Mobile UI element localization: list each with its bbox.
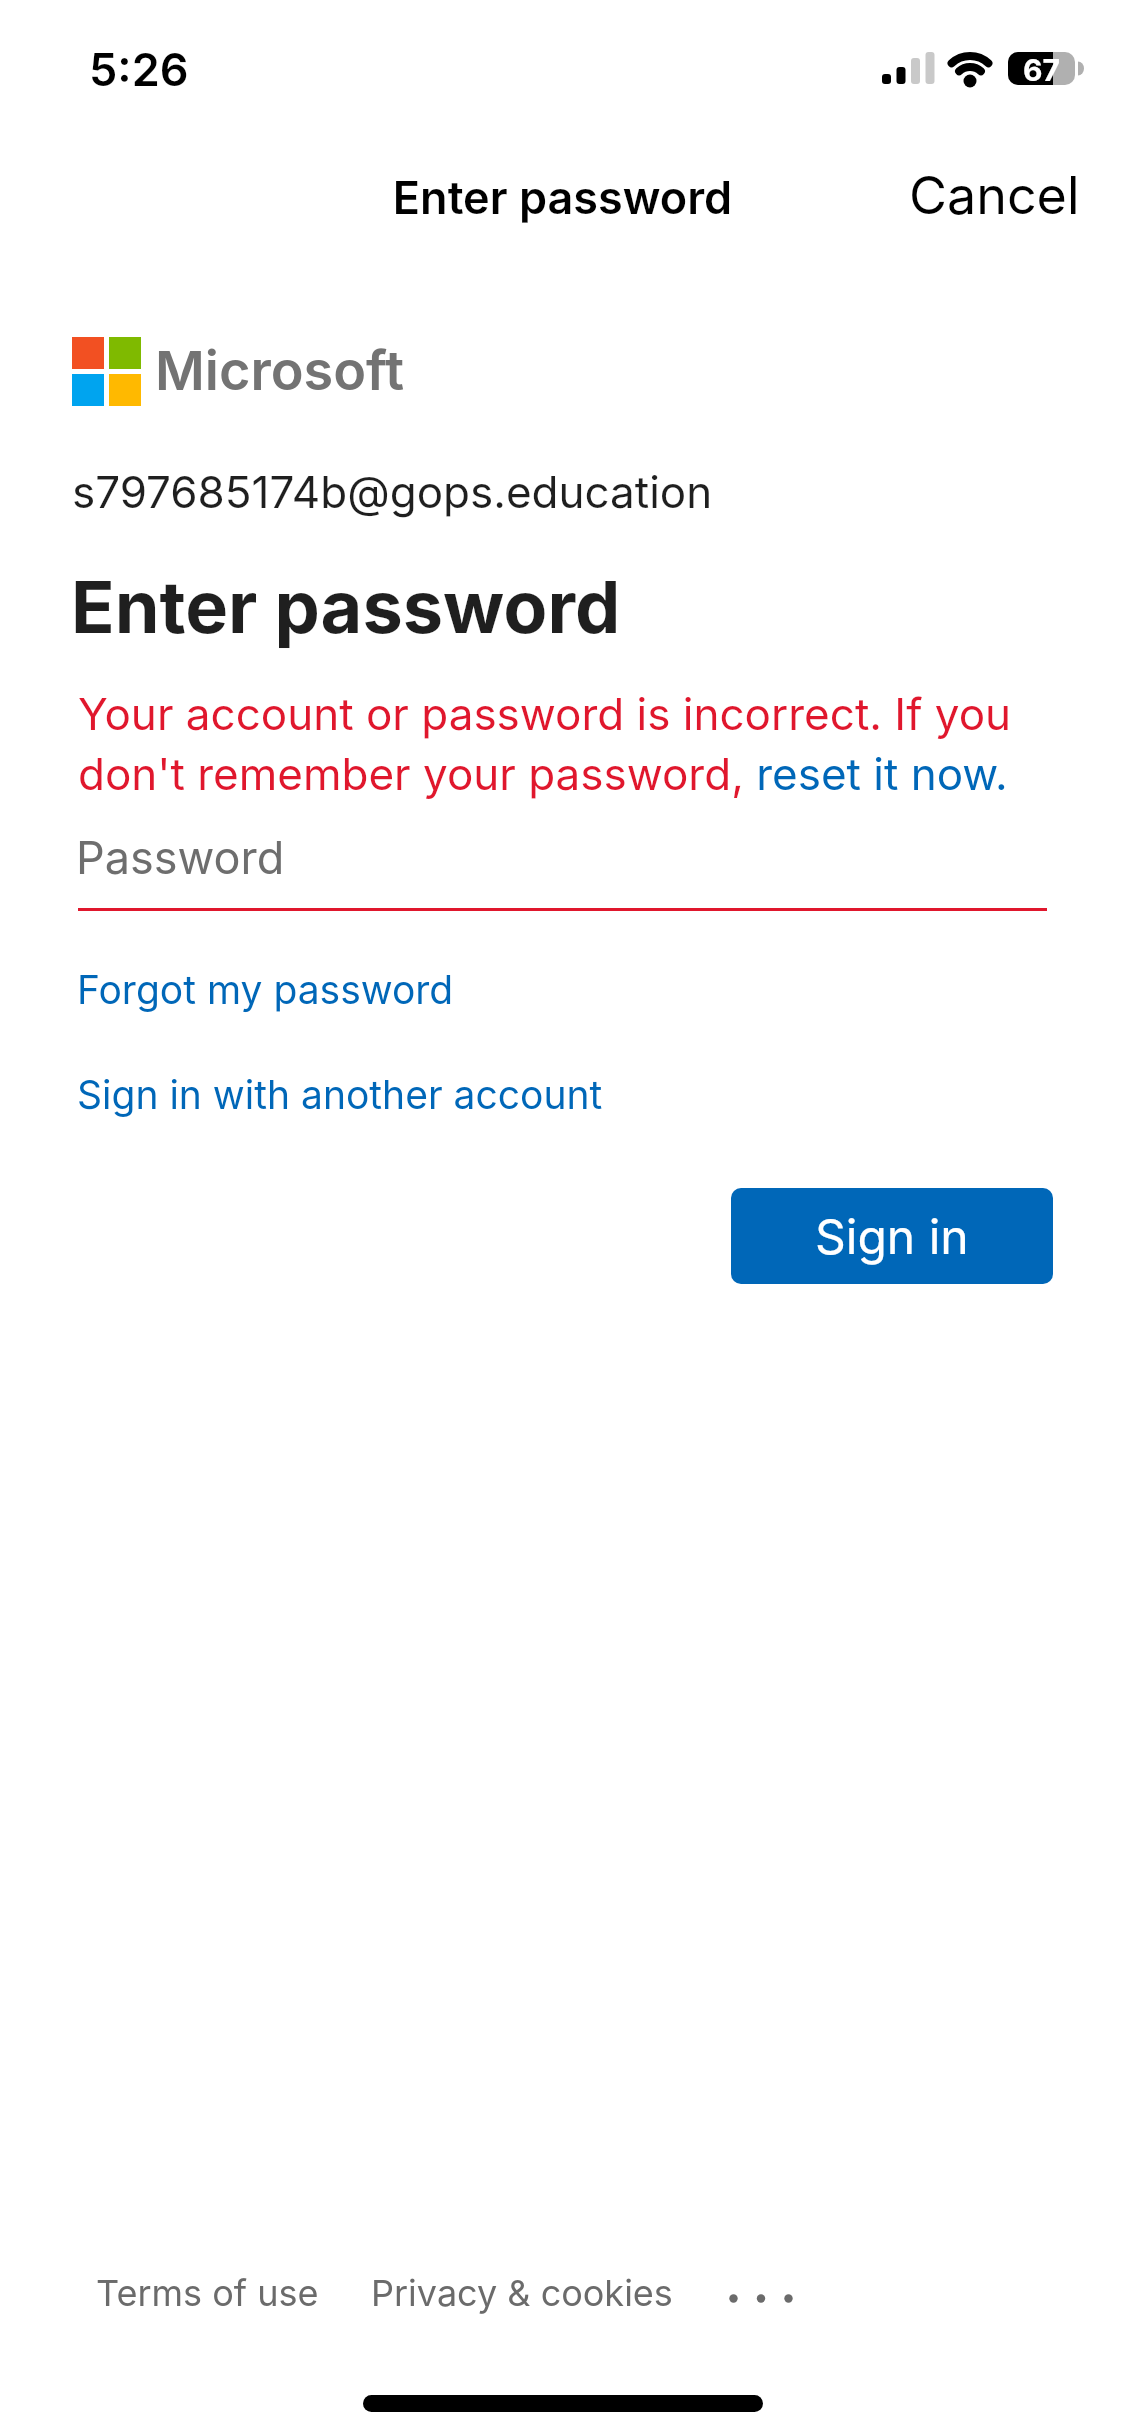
staticText: Password [76,830,285,884]
staticText: 67 [1023,52,1060,85]
button[interactable] [720,2282,808,2316]
button[interactable]: Sign in [731,1188,1053,1284]
button[interactable]: Forgot my password [77,966,454,1013]
staticText: s797685174b@gops.education [72,465,713,518]
button[interactable]: Terms of use [96,2271,319,2315]
staticText: Terms of use [96,2271,319,2315]
staticText: Enter password [71,563,621,650]
staticText: Sign in [815,1207,969,1265]
staticText: Forgot my password [77,966,454,1013]
staticText: 5:26 [89,42,189,96]
staticText: Your account or password is incorrect. I… [78,687,1012,801]
button[interactable]: Sign in with another account [77,1071,603,1118]
staticText: Cancel [909,164,1080,227]
staticText: Enter password [0,170,1125,224]
staticText: Sign in with another account [77,1071,603,1118]
staticText: Privacy & cookies [371,2271,673,2315]
button[interactable]: Cancel [909,164,1080,227]
button[interactable]: Privacy & cookies [371,2271,673,2315]
staticText: Microsoft [155,338,405,403]
